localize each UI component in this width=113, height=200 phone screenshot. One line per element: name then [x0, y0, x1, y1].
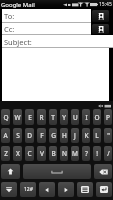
button[interactable]: M — [71, 146, 79, 161]
other: Shift — [7, 168, 14, 175]
button[interactable]: Hide keyboard — [1, 182, 17, 197]
staticText: Q — [3, 113, 9, 122]
button[interactable]: V — [37, 146, 46, 161]
button[interactable]: Space — [23, 164, 91, 179]
staticText: U — [73, 113, 78, 122]
staticText: Cc: — [4, 24, 15, 34]
staticText: V — [40, 149, 44, 158]
button[interactable]: " — [104, 128, 112, 143]
staticText: B — [51, 149, 56, 158]
button[interactable]: X — [13, 146, 22, 161]
button[interactable]: ? — [82, 146, 90, 161]
button[interactable]: / — [104, 146, 112, 161]
staticText: L — [95, 131, 99, 140]
button[interactable]: F — [37, 128, 46, 143]
button[interactable]: H — [60, 128, 68, 143]
button[interactable]: Z — [1, 146, 10, 161]
button[interactable]: U — [71, 109, 79, 125]
button[interactable]: Cc: — [2, 23, 91, 35]
staticText: ! — [96, 149, 98, 158]
button[interactable]: B — [49, 146, 57, 161]
button[interactable]: W — [13, 109, 22, 125]
staticText: M — [72, 149, 78, 158]
other: Backspace — [99, 169, 108, 175]
button[interactable]: G — [49, 128, 57, 143]
staticText: ? — [85, 149, 88, 158]
button[interactable]: Menu — [77, 182, 93, 197]
other: Space — [50, 169, 64, 174]
staticText: 15:45 — [99, 1, 112, 8]
staticText: R — [39, 113, 44, 122]
other: Move right — [63, 187, 69, 193]
other: Move left — [44, 187, 50, 193]
other: Menu — [81, 186, 89, 193]
button[interactable]: K — [82, 128, 90, 143]
other: Enter — [100, 186, 108, 193]
staticText: Z — [4, 149, 8, 158]
button[interactable]: I — [82, 109, 90, 125]
button[interactable]: N — [60, 146, 68, 161]
staticText: P — [106, 113, 110, 122]
staticText: J — [74, 131, 76, 140]
staticText: I — [85, 113, 88, 122]
staticText: Y — [62, 113, 66, 122]
staticText: N — [62, 149, 67, 158]
button[interactable]: Move right — [58, 182, 74, 197]
button[interactable]: Backspace — [94, 164, 112, 179]
button[interactable]: Move left — [39, 182, 55, 197]
button[interactable]: Shift — [1, 164, 20, 179]
staticText: S — [16, 131, 20, 140]
button[interactable]: Enter — [96, 182, 112, 197]
button[interactable]: S — [13, 128, 22, 143]
button[interactable]: T — [49, 109, 57, 125]
button[interactable]: L — [93, 128, 101, 143]
staticText: G — [51, 131, 56, 140]
staticText: A — [3, 131, 8, 140]
staticText: D — [27, 131, 32, 140]
staticText: To: — [4, 11, 15, 21]
button[interactable]: E — [25, 109, 34, 125]
staticText: H — [62, 131, 67, 140]
other: Hide keyboard — [5, 186, 13, 193]
button[interactable]: C — [25, 146, 34, 161]
staticText: F — [40, 131, 44, 140]
button[interactable]: Choose contact — [92, 24, 109, 34]
button[interactable]: R — [37, 109, 46, 125]
staticText: " — [107, 131, 110, 140]
staticText: Google Mail — [1, 1, 35, 9]
staticText: E — [28, 113, 32, 122]
button[interactable]: Q — [1, 109, 10, 125]
staticText: / — [107, 149, 110, 158]
button[interactable]: To: — [2, 9, 91, 23]
staticText: K — [84, 131, 89, 140]
staticText: W — [14, 113, 21, 122]
staticText: X — [16, 149, 20, 158]
button[interactable]: O — [93, 109, 101, 125]
button[interactable]: A — [1, 128, 10, 143]
button[interactable]: Subject: — [2, 35, 113, 48]
button[interactable]: 12# — [20, 182, 36, 197]
staticText: O — [94, 113, 100, 122]
staticText: T — [51, 113, 55, 122]
staticText: 12# — [24, 186, 33, 193]
button[interactable]: Y — [60, 109, 68, 125]
button[interactable]: Choose contact — [92, 10, 109, 22]
button[interactable]: P — [104, 109, 112, 125]
button[interactable]: D — [25, 128, 34, 143]
staticText: Subject: — [4, 37, 32, 47]
button[interactable]: J — [71, 128, 79, 143]
staticText: C — [27, 149, 32, 158]
button[interactable]: ! — [93, 146, 101, 161]
